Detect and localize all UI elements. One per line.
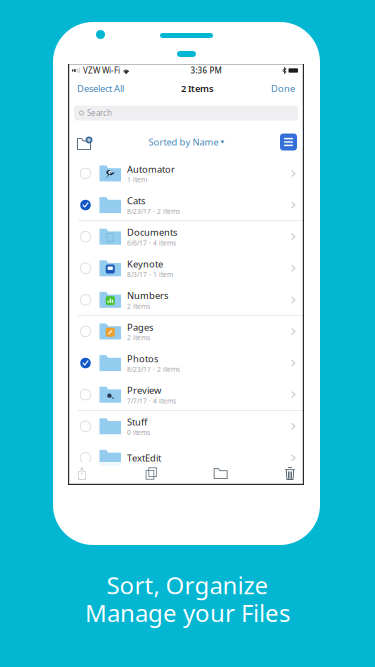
button[interactable]: Automator bbox=[68, 158, 304, 190]
button[interactable]: Duplicate bbox=[137, 462, 165, 485]
staticText: 7/7/17 · 4 items bbox=[127, 396, 176, 405]
button[interactable]: List View bbox=[277, 130, 300, 153]
button[interactable]: Keynote bbox=[68, 253, 304, 284]
staticText: 8/23/17 · 2 items bbox=[127, 365, 180, 374]
staticText: Done bbox=[271, 82, 295, 95]
button[interactable]: Stuff bbox=[68, 411, 304, 442]
button[interactable]: Cats bbox=[68, 190, 304, 221]
staticText: Cats bbox=[127, 194, 145, 207]
staticText: Sort, Organize bbox=[106, 569, 268, 601]
staticText: 2 items bbox=[127, 302, 150, 310]
button[interactable]: Pages bbox=[68, 316, 304, 348]
button[interactable]: Preview bbox=[68, 379, 304, 411]
button[interactable]: TextEdit bbox=[68, 442, 304, 474]
staticText: Automator bbox=[127, 163, 175, 175]
staticText: 8/23/17 · 2 items bbox=[127, 207, 180, 216]
button[interactable]: Deselect All bbox=[74, 79, 127, 98]
staticText: Stuff bbox=[127, 416, 147, 428]
staticText: Keynote bbox=[127, 258, 163, 270]
staticText: Deselect All bbox=[77, 82, 124, 95]
staticText: 0 items bbox=[127, 428, 150, 437]
staticText: Documents bbox=[127, 226, 177, 238]
staticText: Preview bbox=[127, 384, 161, 396]
button[interactable]: Documents bbox=[68, 221, 304, 253]
staticText: 2 Items bbox=[181, 82, 214, 95]
staticText: Photos bbox=[127, 352, 158, 365]
staticText: TextEdit bbox=[127, 452, 161, 464]
staticText: 8/3/17 · 1 item bbox=[127, 270, 173, 279]
staticText: 1 item bbox=[127, 175, 147, 184]
staticText: 3:36 PM bbox=[190, 65, 221, 76]
button[interactable]: New Folder bbox=[72, 132, 96, 152]
button[interactable]: Sorted by Name bbox=[144, 132, 228, 152]
button[interactable]: Numbers bbox=[68, 284, 304, 316]
staticText: Sorted by Name bbox=[148, 136, 218, 148]
staticText: Pages bbox=[127, 321, 153, 333]
staticText: 6/6/17 · 4 items bbox=[127, 238, 176, 247]
staticText: Search bbox=[87, 108, 112, 118]
staticText: VZW Wi-Fi bbox=[83, 65, 120, 76]
button[interactable]: Move to Folder bbox=[207, 462, 235, 485]
button[interactable]: Delete bbox=[276, 462, 304, 485]
staticText: Manage your Files bbox=[85, 597, 290, 629]
button[interactable]: Done bbox=[268, 79, 298, 98]
button[interactable]: Share bbox=[68, 462, 96, 485]
button[interactable]: Photos bbox=[68, 348, 304, 379]
staticText: Numbers bbox=[127, 289, 168, 302]
staticText: 2 items bbox=[127, 333, 150, 342]
